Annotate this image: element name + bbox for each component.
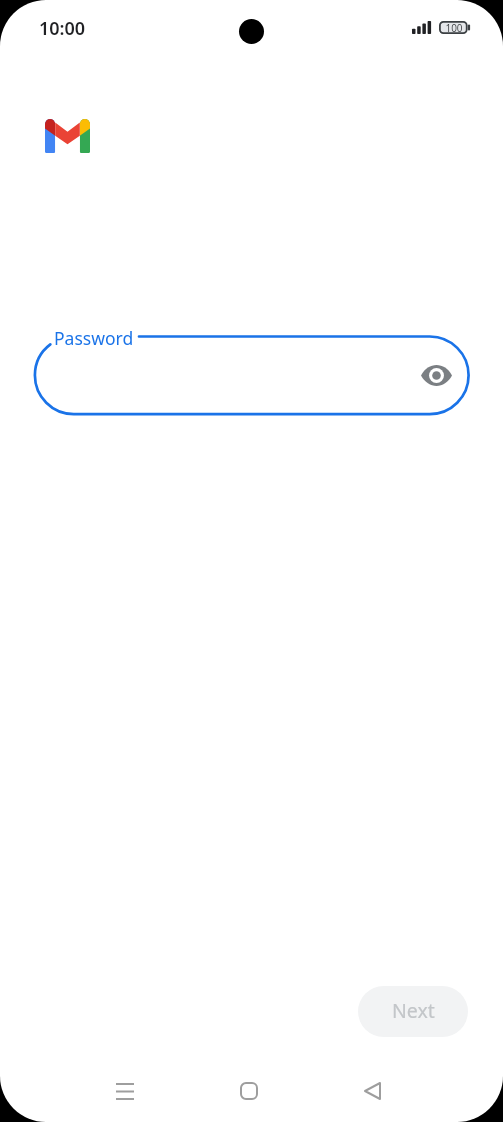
- button[interactable]: Password: [33, 335, 470, 416]
- staticText: Next: [392, 997, 435, 1024]
- button[interactable]: Next: [358, 986, 468, 1037]
- button[interactable]: Recent apps: [96, 1060, 153, 1122]
- staticText: 100: [445, 21, 463, 34]
- button[interactable]: Home: [220, 1060, 277, 1122]
- button[interactable]: Back: [344, 1060, 401, 1122]
- button[interactable]: Show password: [415, 354, 457, 396]
- staticText: Password: [54, 326, 134, 350]
- staticText: 10:00: [39, 16, 86, 41]
